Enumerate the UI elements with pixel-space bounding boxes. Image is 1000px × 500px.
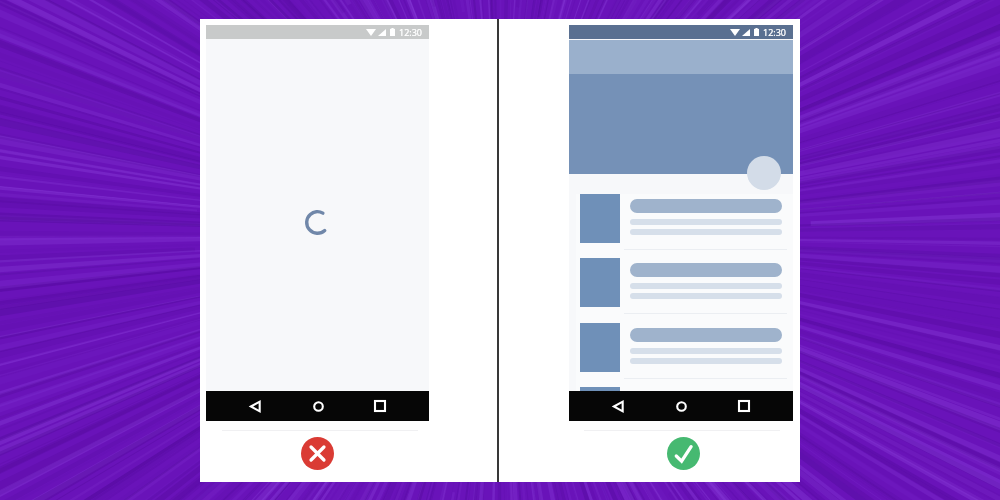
- button[interactable]: Back: [241, 392, 269, 420]
- button[interactable]: Failure: [301, 437, 334, 470]
- button[interactable]: Recents: [366, 392, 394, 420]
- button[interactable]: [569, 194, 793, 259]
- button[interactable]: [569, 323, 793, 388]
- button[interactable]: [569, 387, 793, 391]
- button[interactable]: Back: [604, 392, 632, 420]
- button[interactable]: [569, 258, 793, 323]
- button[interactable]: Home: [667, 392, 695, 420]
- staticText: 12:30: [763, 26, 787, 38]
- button[interactable]: Recents: [730, 392, 758, 420]
- staticText: 12:30: [399, 26, 423, 38]
- button[interactable]: Add: [747, 156, 781, 190]
- button[interactable]: Success: [667, 437, 700, 470]
- button[interactable]: Home: [304, 392, 332, 420]
